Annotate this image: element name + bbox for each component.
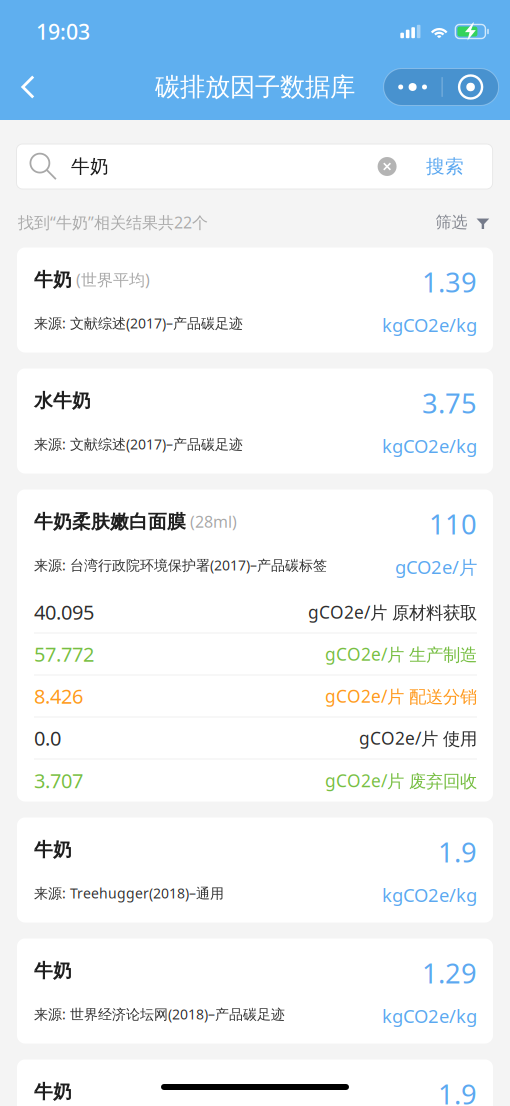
staticText: 碳排放因子数据库 bbox=[155, 71, 355, 103]
button[interactable]: 牛奶 bbox=[17, 1059, 493, 1106]
staticText: 来源: 文献综述(2017)–产品碳足迹 bbox=[34, 313, 243, 332]
staticText: 0.0 bbox=[34, 724, 61, 752]
button[interactable]: 牛奶 bbox=[17, 247, 493, 352]
button[interactable]: Clear bbox=[378, 157, 397, 176]
staticText: 找到“牛奶”相关结果共22个 bbox=[18, 211, 208, 233]
staticText: 1.39 bbox=[422, 263, 477, 300]
staticText: gCO2e/片 废弃回收 bbox=[325, 769, 477, 792]
staticText: 来源: Treehugger(2018)–通用 bbox=[34, 883, 224, 902]
staticText: kgCO2e/kg bbox=[382, 1003, 477, 1028]
button[interactable]: 筛选 bbox=[435, 212, 489, 232]
button[interactable]: Close bbox=[443, 68, 499, 105]
staticText: gCO2e/片 bbox=[395, 554, 477, 579]
staticText: 来源: 台湾行政院环境保护署(2017)–产品碳标签 bbox=[34, 555, 327, 574]
staticText: 牛奶柔肤嫩白面膜 bbox=[34, 510, 186, 533]
staticText: gCO2e/片 生产制造 bbox=[325, 642, 477, 666]
staticText: 110 bbox=[429, 505, 477, 542]
staticText: kgCO2e/kg bbox=[382, 882, 477, 907]
staticText: 牛奶 bbox=[34, 1080, 72, 1103]
staticText: 牛奶 bbox=[34, 959, 72, 982]
staticText: 来源: 世界经济论坛网(2018)–产品碳足迹 bbox=[34, 1004, 285, 1023]
staticText: kgCO2e/kg bbox=[382, 433, 477, 458]
staticText: 1.9 bbox=[438, 833, 477, 870]
staticText: kgCO2e/kg bbox=[382, 312, 477, 337]
staticText: 来源: 文献综述(2017)–产品碳足迹 bbox=[34, 434, 243, 453]
staticText: (世界平均) bbox=[72, 269, 150, 290]
staticText: 牛奶 bbox=[71, 155, 109, 178]
staticText: 19:03 bbox=[36, 17, 90, 46]
staticText: 搜索 bbox=[426, 155, 464, 178]
staticText: 57.772 bbox=[34, 640, 94, 668]
staticText: 8.426 bbox=[34, 682, 83, 710]
button[interactable]: 牛奶 bbox=[17, 938, 493, 1043]
staticText: 牛奶 bbox=[34, 838, 72, 861]
staticText: 3.707 bbox=[34, 767, 83, 794]
staticText: 1.29 bbox=[422, 954, 477, 991]
button[interactable]: 搜索 bbox=[426, 155, 464, 178]
staticText: 筛选 bbox=[435, 212, 467, 232]
staticText: gCO2e/片 配送分销 bbox=[325, 684, 477, 708]
staticText: 40.095 bbox=[34, 598, 94, 626]
staticText: 牛奶 bbox=[34, 268, 72, 291]
button[interactable]: Back bbox=[6, 65, 50, 109]
staticText: 1.9 bbox=[438, 1075, 477, 1106]
button[interactable]: More bbox=[384, 68, 442, 105]
staticText: 3.75 bbox=[422, 384, 477, 421]
staticText: 水牛奶 bbox=[34, 389, 91, 412]
staticText: gCO2e/片 使用 bbox=[359, 726, 477, 750]
button[interactable]: 水牛奶 bbox=[17, 368, 493, 473]
button[interactable]: 牛奶柔肤嫩白面膜 bbox=[17, 489, 493, 801]
staticText: (28ml) bbox=[186, 511, 237, 532]
button[interactable]: 牛奶 bbox=[17, 817, 493, 922]
staticText: gCO2e/片 原材料获取 bbox=[308, 600, 477, 624]
